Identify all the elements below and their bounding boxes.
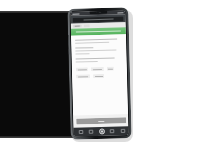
button[interactable]: Back [86,127,95,136]
button[interactable] [76,117,126,125]
button[interactable]: Recents [107,127,116,136]
button[interactable] [71,27,126,36]
button[interactable] [84,24,90,27]
button[interactable] [93,74,104,78]
button[interactable] [73,24,82,28]
button[interactable]: Menu [76,127,85,137]
button[interactable]: Search [72,16,124,23]
button[interactable] [91,67,104,71]
button[interactable]: More [118,126,127,135]
button[interactable]: Home [97,127,106,136]
button[interactable] [76,67,88,72]
button[interactable] [76,74,90,79]
button[interactable] [107,67,114,71]
